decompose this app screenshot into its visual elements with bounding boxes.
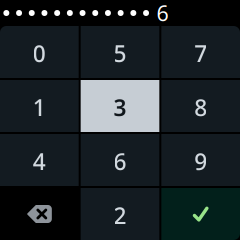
staticText: 0 xyxy=(33,38,46,68)
staticText: 8 xyxy=(194,92,207,122)
staticText: 3 xyxy=(113,92,126,122)
button[interactable]: 6 xyxy=(81,134,159,186)
staticText: 6 xyxy=(156,0,168,27)
staticText: 9 xyxy=(194,146,207,176)
staticText: 5 xyxy=(113,38,126,68)
button[interactable]: 5 xyxy=(81,26,159,78)
button[interactable]: 2 xyxy=(81,188,159,240)
button[interactable]: 9 xyxy=(161,134,240,186)
button[interactable]: 7 xyxy=(161,26,240,78)
staticText: 6 xyxy=(113,146,126,176)
button[interactable]: 0 xyxy=(0,26,79,78)
button[interactable]: 8 xyxy=(161,80,240,132)
button[interactable]: 4 xyxy=(0,134,79,186)
button[interactable]: Confirm xyxy=(161,188,240,240)
button[interactable]: Delete xyxy=(0,188,79,240)
button[interactable]: 1 xyxy=(0,80,79,132)
staticText: 2 xyxy=(113,200,126,230)
staticText: 1 xyxy=(33,92,46,122)
staticText: 7 xyxy=(194,38,207,68)
button[interactable]: 3 xyxy=(81,80,159,132)
staticText: 4 xyxy=(33,146,46,176)
